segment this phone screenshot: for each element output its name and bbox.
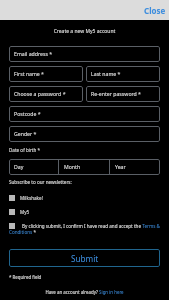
staticText: Gender * (14, 130, 37, 137)
staticText: First name * (14, 70, 44, 77)
button[interactable]: Last name * (86, 66, 160, 82)
button[interactable]: Month (59, 159, 109, 175)
button[interactable]: Choose a password * (9, 86, 83, 102)
staticText: Year (115, 163, 126, 170)
button[interactable]: Year (110, 159, 160, 175)
staticText: Last name * (91, 70, 121, 77)
button[interactable]: Re-enter password * (86, 86, 160, 102)
button[interactable]: Postcode * (9, 106, 160, 122)
staticText: * Required field (9, 274, 42, 280)
button[interactable]: Close (138, 1, 169, 19)
button[interactable]: Gender * (9, 126, 160, 142)
button[interactable]: Submit (9, 249, 160, 267)
staticText: Subscribe to our newsletters: (9, 179, 72, 185)
staticText: Have an account already? Sign in here (9, 289, 160, 295)
button[interactable]: Email address * (9, 46, 160, 62)
button[interactable]: Milkshake! (9, 195, 160, 201)
staticText: Month (64, 163, 81, 170)
staticText: Submit (71, 253, 99, 264)
staticText: Day (14, 163, 24, 170)
staticText: Email address * (14, 50, 53, 57)
staticText: By clicking submit, I confirm I have rea… (9, 223, 160, 236)
staticText: Postcode * (14, 110, 41, 117)
staticText: Re-enter password * (91, 90, 141, 97)
button[interactable]: Day (9, 159, 58, 175)
staticText: Create a new My5 account (0, 28, 169, 35)
staticText: Choose a password * (14, 90, 66, 97)
staticText: Close (144, 5, 166, 16)
button[interactable]: First name * (9, 66, 83, 82)
staticText: Milkshake! (20, 195, 43, 201)
staticText: Date of birth * (9, 147, 41, 153)
button[interactable]: By clicking submit, I confirm I have rea… (9, 223, 160, 236)
staticText: My5 (20, 209, 30, 215)
button[interactable]: My5 (9, 209, 160, 215)
